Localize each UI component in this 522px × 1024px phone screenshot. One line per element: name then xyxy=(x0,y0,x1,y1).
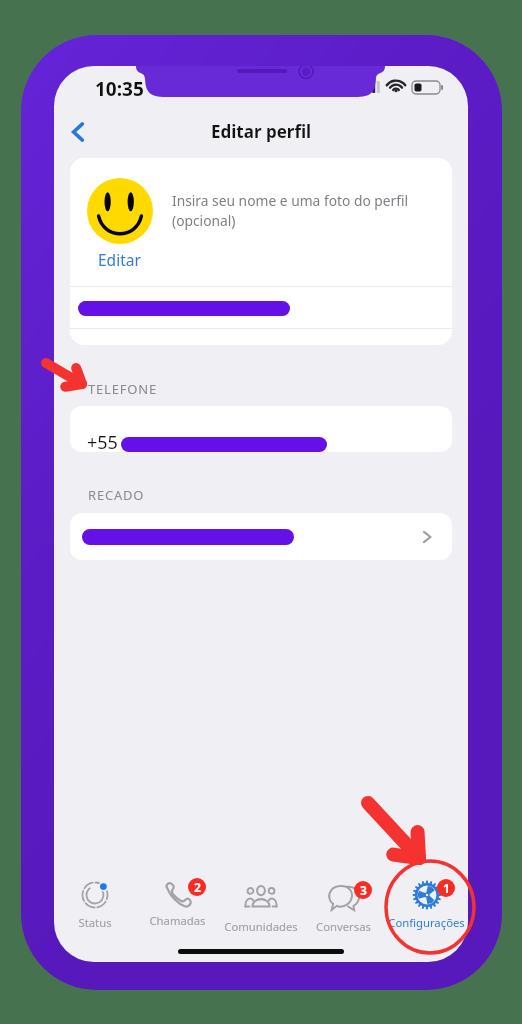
button[interactable]: Editar xyxy=(98,249,141,270)
staticText: 2 xyxy=(194,879,201,895)
staticText: Nome xyxy=(82,295,125,315)
staticText: Chamadas xyxy=(149,913,206,928)
button[interactable]: 2 xyxy=(136,871,219,928)
button[interactable]: Comunidades xyxy=(219,871,302,934)
button[interactable] xyxy=(70,513,452,560)
button[interactable]: 3 xyxy=(302,871,385,934)
staticText: Status xyxy=(78,915,112,930)
staticText: Insira seu nome e uma foto do perfil (op… xyxy=(172,191,409,230)
staticText: Editar perfil xyxy=(211,120,312,143)
staticText: 1 xyxy=(443,880,450,896)
staticText: 10:35 xyxy=(95,76,144,102)
staticText: Configurações xyxy=(388,915,465,930)
staticText: +55 xyxy=(87,430,118,452)
staticText: 3 xyxy=(360,882,367,898)
staticText: Comunidades xyxy=(224,919,298,934)
staticText: Editar xyxy=(98,249,141,270)
staticText: Conversas xyxy=(316,919,371,934)
staticText: TELEFONE xyxy=(88,380,157,398)
button[interactable]: Status xyxy=(54,871,136,930)
button[interactable]: Voltar xyxy=(56,110,100,154)
staticText: RECADO xyxy=(88,486,145,504)
button[interactable]: +55 xyxy=(70,406,452,452)
button[interactable]: 1 xyxy=(385,871,468,930)
